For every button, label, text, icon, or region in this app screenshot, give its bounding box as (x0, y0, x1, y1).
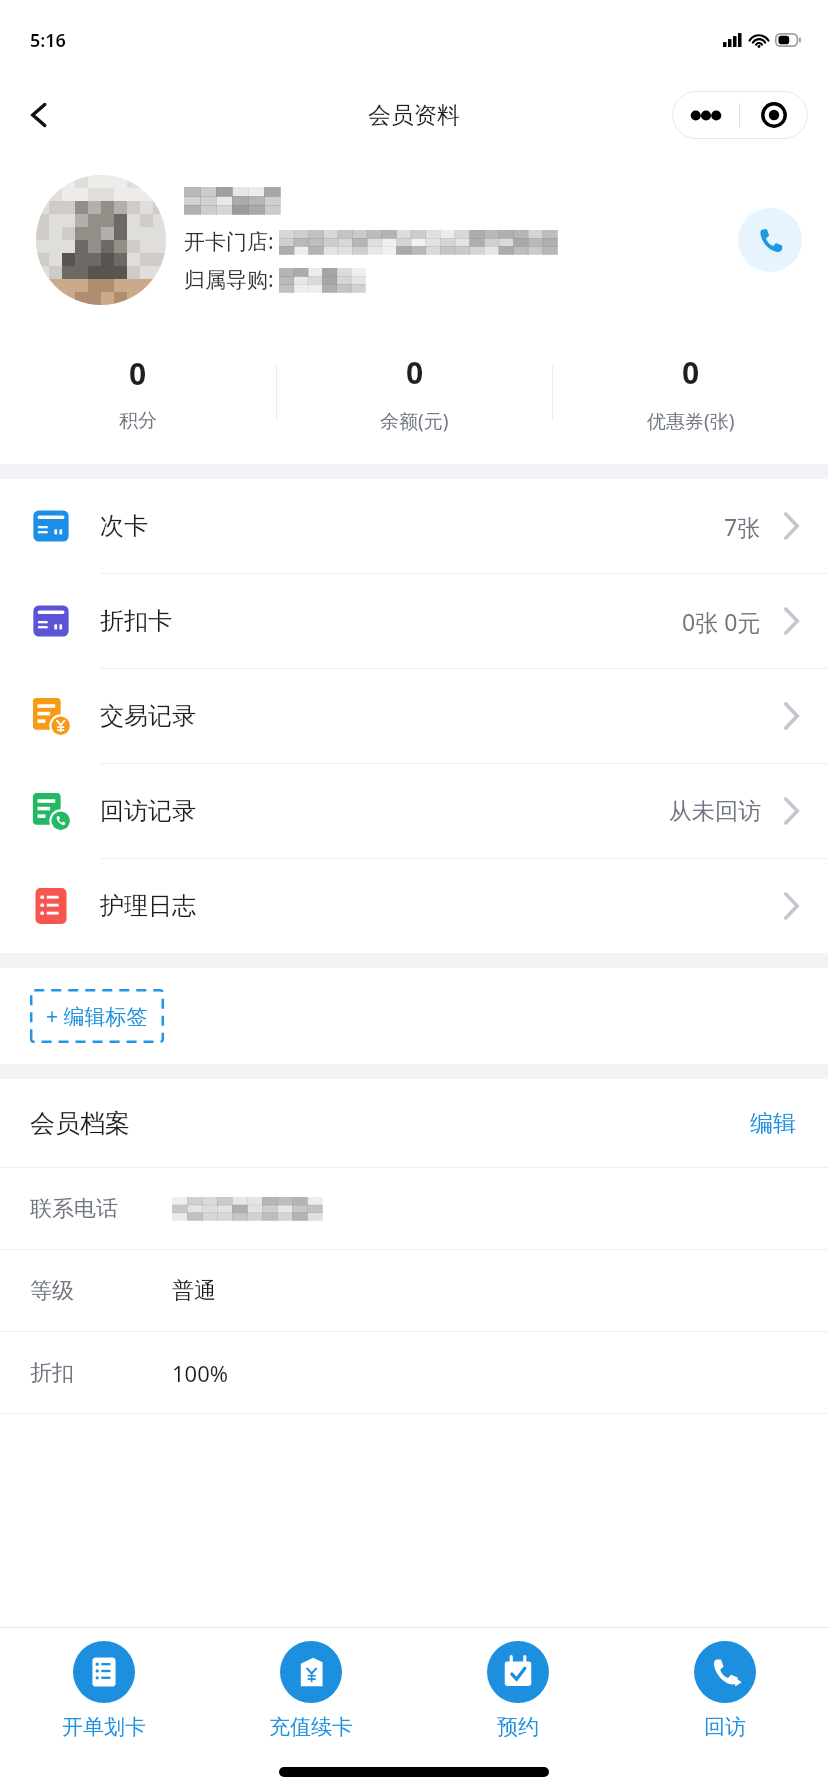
staticText: 普通 (172, 1277, 216, 1305)
button[interactable]: + 编辑标签 (30, 989, 164, 1043)
staticText: + 编辑标签 (46, 1002, 148, 1031)
staticText: 会员资料 (368, 101, 460, 130)
button[interactable]: 折扣卡 (0, 574, 828, 668)
button[interactable]: 充值续卡 (207, 1628, 414, 1752)
staticText: 联系电话 (30, 1195, 118, 1223)
button[interactable]: Close (740, 91, 808, 139)
staticText: 从未回访 (669, 797, 761, 826)
staticText: 折扣 (30, 1359, 74, 1387)
button[interactable]: 次卡 (0, 479, 828, 573)
button[interactable]: 护理日志 (0, 859, 828, 953)
button[interactable]: 回访记录 (0, 764, 828, 858)
staticText: 余额(元) (380, 408, 449, 434)
staticText: 0 (129, 353, 147, 394)
button[interactable]: 0 (0, 347, 276, 439)
staticText: 0张 0元 (682, 606, 761, 637)
staticText: 7张 (724, 511, 761, 542)
button[interactable]: Back (10, 86, 68, 144)
staticText: 交易记录 (100, 701, 777, 731)
staticText: 回访记录 (100, 796, 669, 826)
staticText: 0 (406, 352, 424, 393)
button[interactable]: 0 (277, 346, 552, 440)
button[interactable]: 交易记录 (0, 669, 828, 763)
button[interactable]: 联系电话 (0, 1168, 828, 1249)
staticText: 开单划卡 (62, 1714, 146, 1740)
staticText: 护理日志 (100, 891, 777, 921)
button[interactable]: 等级 (0, 1250, 828, 1331)
button[interactable]: 编辑 (744, 1099, 802, 1148)
button[interactable]: Call member (738, 208, 802, 272)
staticText: 积分 (119, 409, 157, 433)
staticText: 编辑 (750, 1109, 796, 1138)
staticText: 0 (682, 352, 700, 393)
button[interactable]: 折扣 (0, 1332, 828, 1413)
button[interactable]: More options (672, 91, 739, 139)
staticText: 回访 (704, 1714, 746, 1740)
button[interactable]: 0 (553, 346, 828, 440)
staticText: 等级 (30, 1277, 74, 1305)
staticText: 次卡 (100, 511, 724, 541)
staticText: 5:16 (30, 28, 66, 53)
staticText: 100% (172, 1358, 229, 1388)
staticText: 归属导购: (184, 265, 274, 294)
staticText: 会员档案 (30, 1108, 744, 1139)
staticText: 折扣卡 (100, 606, 682, 636)
staticText: 充值续卡 (269, 1714, 353, 1740)
staticText: 优惠券(张) (647, 408, 735, 434)
staticText: 预约 (497, 1714, 539, 1740)
button[interactable]: 预约 (414, 1628, 621, 1752)
staticText: 开卡门店: (184, 227, 274, 256)
button[interactable]: 回访 (621, 1628, 828, 1752)
button[interactable]: 开单划卡 (0, 1628, 207, 1752)
